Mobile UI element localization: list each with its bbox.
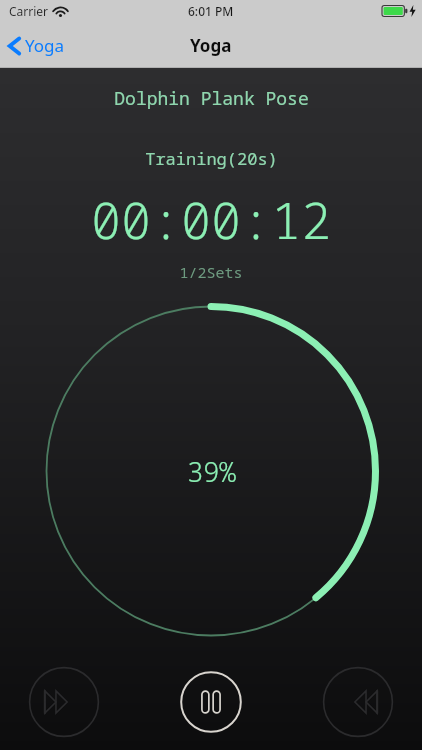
staticText: Yoga: [190, 34, 232, 57]
staticText: Training(20s): [145, 147, 278, 170]
staticText: 00:00:12: [91, 186, 331, 254]
button[interactable]: Previous: [28, 666, 100, 738]
staticText: 1/2Sets: [179, 262, 243, 282]
button[interactable]: Next: [322, 666, 394, 738]
button[interactable]: Yoga: [0, 28, 75, 63]
staticText: Yoga: [25, 34, 65, 57]
staticText: 39%: [187, 453, 236, 490]
staticText: 6:01 PM: [188, 3, 234, 19]
staticText: Dolphin Plank Pose: [114, 86, 309, 111]
staticText: Carrier: [9, 3, 49, 19]
button[interactable]: Pause: [178, 669, 244, 735]
